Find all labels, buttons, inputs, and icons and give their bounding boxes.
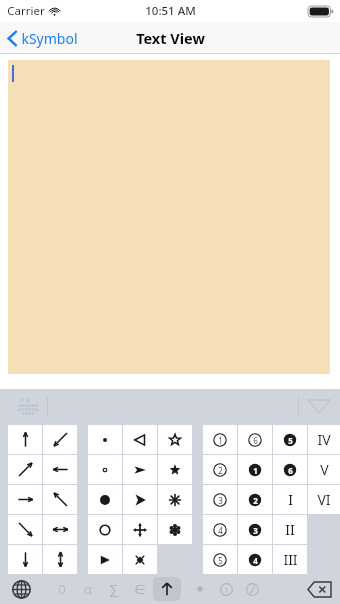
button[interactable]: I bbox=[273, 485, 307, 514]
staticText: 0 bbox=[58, 580, 66, 598]
button[interactable]: Arrows bbox=[153, 577, 181, 601]
button[interactable]: a_ul bbox=[43, 485, 77, 514]
button[interactable]: flower bbox=[158, 515, 192, 544]
staticText: VI bbox=[317, 490, 331, 509]
staticText: 3 bbox=[253, 525, 258, 536]
button[interactable]: a_up bbox=[8, 425, 42, 454]
button[interactable]: move bbox=[123, 515, 157, 544]
button[interactable]: aster bbox=[158, 485, 192, 514]
button[interactable]: circ_f bbox=[88, 485, 122, 514]
button[interactable]: kSymbol bbox=[7, 29, 78, 48]
staticText: 5 bbox=[288, 435, 293, 446]
button[interactable]: Shapes bbox=[187, 576, 213, 602]
other: Symbol palette bbox=[14, 398, 40, 414]
button[interactable]: c4 bbox=[203, 515, 237, 544]
button[interactable]: VI bbox=[308, 485, 340, 514]
button[interactable]: a_l bbox=[43, 455, 77, 484]
staticText: 1 bbox=[253, 465, 258, 476]
staticText: Carrier bbox=[7, 3, 45, 19]
staticText: 1 bbox=[224, 585, 229, 595]
staticText: 4 bbox=[218, 525, 223, 536]
staticText: 6 bbox=[253, 435, 258, 446]
staticText: 2 bbox=[253, 495, 258, 506]
button[interactable]: a_dr bbox=[8, 515, 42, 544]
staticText: kSymbol bbox=[21, 29, 78, 48]
button[interactable]: a_r bbox=[8, 485, 42, 514]
staticText: ∑ bbox=[109, 582, 119, 597]
button[interactable]: star_o bbox=[158, 425, 192, 454]
button[interactable]: α bbox=[75, 577, 101, 601]
button[interactable]: Numbers bbox=[213, 576, 239, 602]
button[interactable]: Expand bbox=[308, 400, 330, 413]
button[interactable]: f5 bbox=[273, 425, 307, 454]
staticText: II bbox=[285, 520, 295, 539]
button[interactable]: dot_s bbox=[88, 425, 122, 454]
button[interactable]: tri_l_o bbox=[123, 425, 157, 454]
button[interactable]: c2 bbox=[203, 455, 237, 484]
button[interactable]: f2 bbox=[238, 485, 272, 514]
staticText: ∈ bbox=[134, 582, 146, 597]
staticText: IV bbox=[317, 430, 331, 449]
staticText: α bbox=[84, 580, 92, 598]
staticText: 4 bbox=[253, 555, 258, 566]
button[interactable]: II bbox=[273, 515, 307, 544]
button[interactable]: III bbox=[273, 545, 307, 574]
button[interactable]: f6 bbox=[273, 455, 307, 484]
button[interactable]: a_lr bbox=[43, 515, 77, 544]
button[interactable]: ∑ bbox=[101, 577, 127, 601]
button[interactable]: circ_o bbox=[88, 515, 122, 544]
staticText: 5 bbox=[218, 555, 223, 566]
staticText: Text View bbox=[136, 28, 205, 48]
button[interactable]: circ_t bbox=[88, 455, 122, 484]
button[interactable]: f3 bbox=[238, 515, 272, 544]
button[interactable]: a_d bbox=[8, 545, 42, 574]
button[interactable]: c6 bbox=[238, 425, 272, 454]
button[interactable]: f1 bbox=[238, 455, 272, 484]
button[interactable]: c1 bbox=[203, 425, 237, 454]
button[interactable]: 0 bbox=[49, 577, 75, 601]
staticText: 2 bbox=[218, 465, 223, 476]
staticText: V bbox=[320, 460, 329, 479]
button[interactable]: f4 bbox=[238, 545, 272, 574]
button[interactable]: tri_r_f bbox=[123, 485, 157, 514]
button[interactable]: a_ur bbox=[8, 455, 42, 484]
staticText: I bbox=[288, 490, 293, 509]
button[interactable]: star_f bbox=[158, 455, 192, 484]
button[interactable]: Switch keyboard bbox=[6, 574, 36, 604]
button[interactable]: a_ud bbox=[43, 545, 77, 574]
button[interactable]: a_dl bbox=[43, 425, 77, 454]
button[interactable]: c5 bbox=[203, 545, 237, 574]
staticText: 6 bbox=[288, 465, 293, 476]
button[interactable]: V bbox=[308, 455, 340, 484]
button[interactable]: ∈ bbox=[127, 577, 153, 601]
button[interactable]: c3 bbox=[203, 485, 237, 514]
staticText: III bbox=[283, 550, 298, 569]
button[interactable]: IV bbox=[308, 425, 340, 454]
button[interactable]: tri_r_thin bbox=[123, 455, 157, 484]
staticText: 10:51 AM bbox=[145, 3, 196, 19]
button[interactable]: Misc bbox=[239, 576, 265, 602]
staticText: 3 bbox=[218, 495, 223, 506]
staticText: 1 bbox=[218, 435, 223, 446]
button[interactable]: tri_r_s bbox=[88, 545, 122, 574]
button[interactable]: diamond bbox=[123, 545, 157, 574]
button[interactable]: Delete bbox=[304, 577, 334, 601]
